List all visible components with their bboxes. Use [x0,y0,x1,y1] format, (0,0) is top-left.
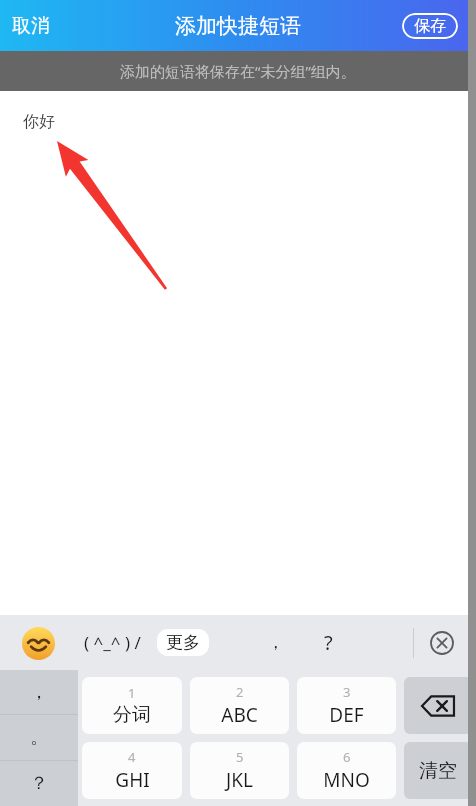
button[interactable]: 4 [82,742,182,799]
staticText: 6 [343,748,351,766]
button[interactable]: 更多 [157,629,209,656]
staticText: 5 [236,748,244,766]
staticText: 分词 [113,703,151,727]
staticText: GHI [115,767,150,793]
staticText: ABC [221,702,258,728]
button[interactable]: Delete [404,677,472,734]
staticText: 2 [236,683,244,701]
staticText: 你好 [23,112,55,132]
button[interactable]: 2 [190,677,289,734]
staticText: JKL [226,767,253,793]
button[interactable]: 保存 [402,13,458,39]
button[interactable]: ( ^_^ ) / [78,625,147,660]
staticText: 添加的短语将保存在“未分组”组内。 [120,61,356,81]
button[interactable]: 。 [0,715,78,760]
button[interactable]: 6 [297,742,396,799]
staticText: ( ^_^ ) / [84,631,141,654]
staticText: 取消 [12,14,50,38]
staticText: 1 [128,684,136,702]
staticText: 更多 [166,632,200,653]
staticText: ？ [30,772,48,795]
staticText: MNO [323,767,370,793]
button[interactable]: ， [257,624,294,661]
button[interactable]: 1 [82,677,182,734]
staticText: ， [267,632,284,653]
staticText: ， [30,681,48,704]
button[interactable]: 你好 [0,91,476,615]
staticText: 3 [343,683,351,701]
button[interactable]: Emoji [20,625,56,661]
staticText: ? [324,629,333,656]
staticText: 4 [128,748,136,766]
button[interactable]: Close keyboard [428,629,456,657]
button[interactable]: ， [0,670,78,714]
staticText: DEF [329,702,364,728]
button[interactable]: ? [314,621,343,664]
button[interactable]: ？ [0,761,78,806]
staticText: 清空 [419,759,457,783]
button[interactable]: 5 [190,742,289,799]
staticText: 添加快捷短语 [175,13,301,39]
button[interactable]: 3 [297,677,396,734]
staticText: 保存 [414,16,446,36]
button[interactable]: 清空 [404,742,472,799]
staticText: 。 [30,726,48,749]
button[interactable]: 取消 [0,4,62,48]
